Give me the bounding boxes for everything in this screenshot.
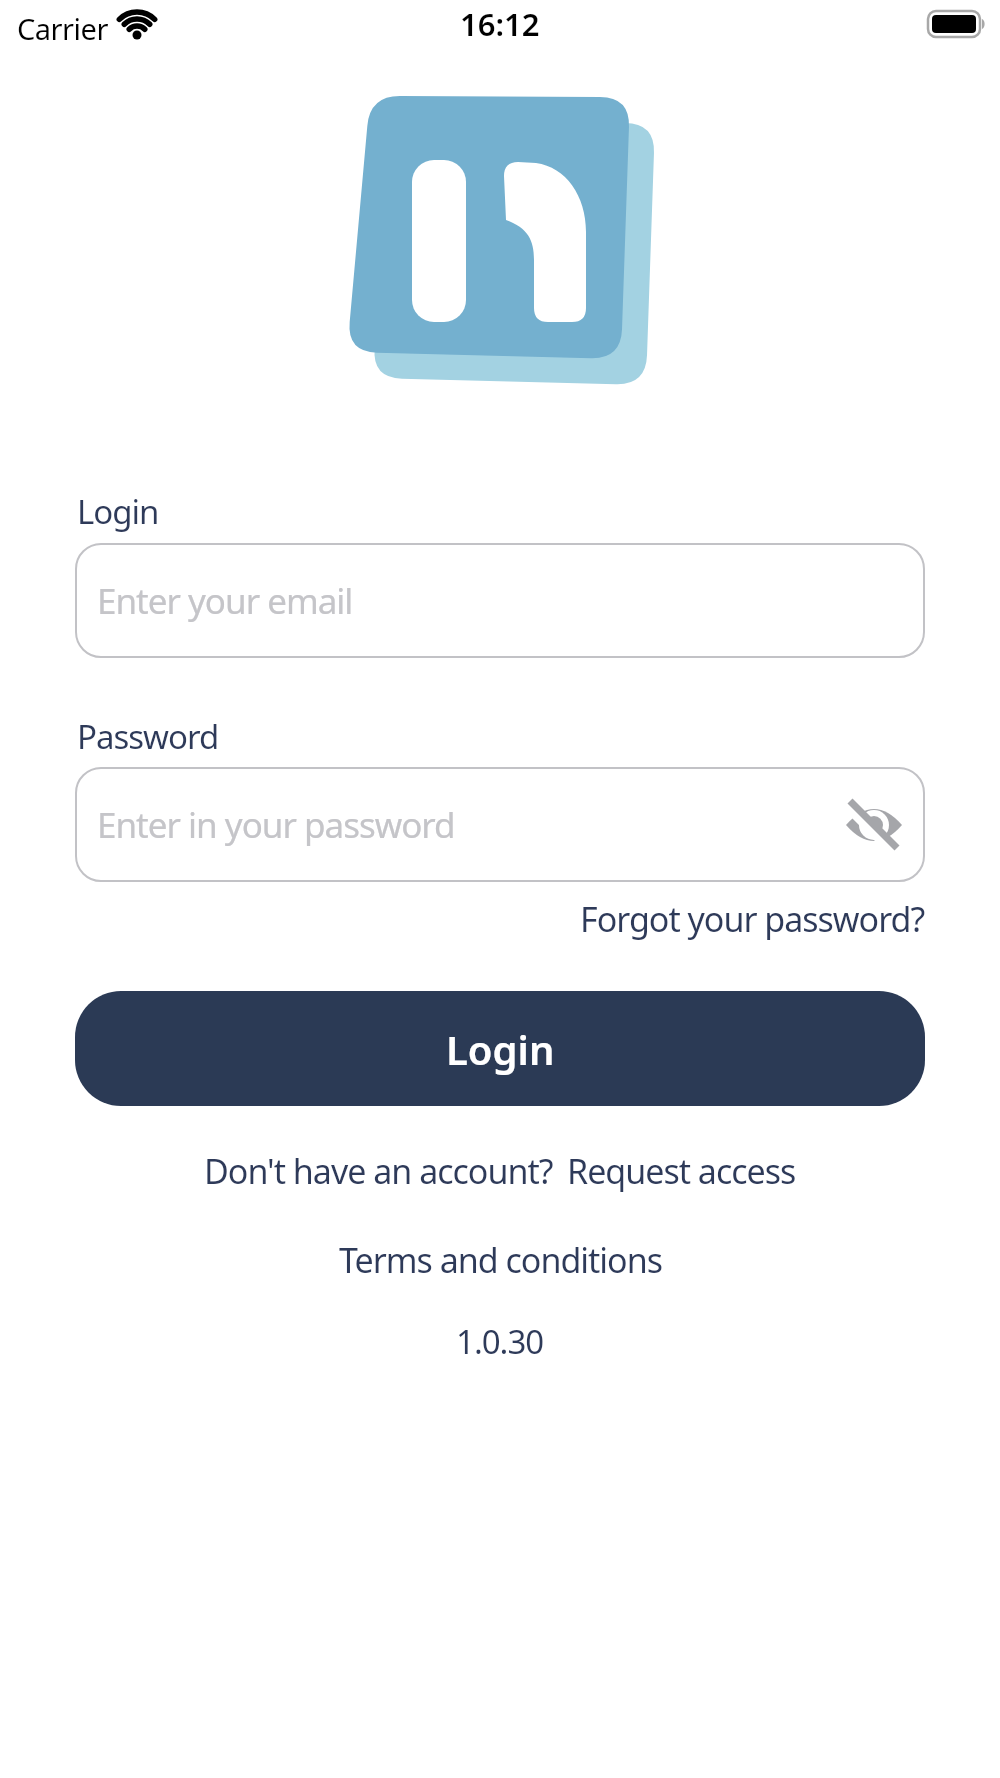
- staticText: Enter in your password: [97, 801, 455, 849]
- staticText: Password: [77, 714, 219, 759]
- button[interactable]: Enter your email: [75, 543, 925, 658]
- staticText: Login: [77, 489, 159, 534]
- button[interactable]: Login: [75, 991, 925, 1106]
- staticText: Enter your email: [97, 577, 353, 625]
- staticText: Don't have an account?: [204, 1148, 553, 1194]
- staticText: 16:12: [460, 3, 540, 45]
- button[interactable]: Enter in your password: [75, 767, 925, 882]
- staticText: 1.0.30: [456, 1319, 544, 1364]
- staticText: Carrier: [17, 9, 108, 48]
- button[interactable]: Forgot your password?: [580, 896, 925, 942]
- staticText: Login: [446, 1022, 555, 1076]
- button[interactable]: Request access: [567, 1148, 796, 1194]
- button[interactable]: Terms and conditions: [339, 1237, 662, 1283]
